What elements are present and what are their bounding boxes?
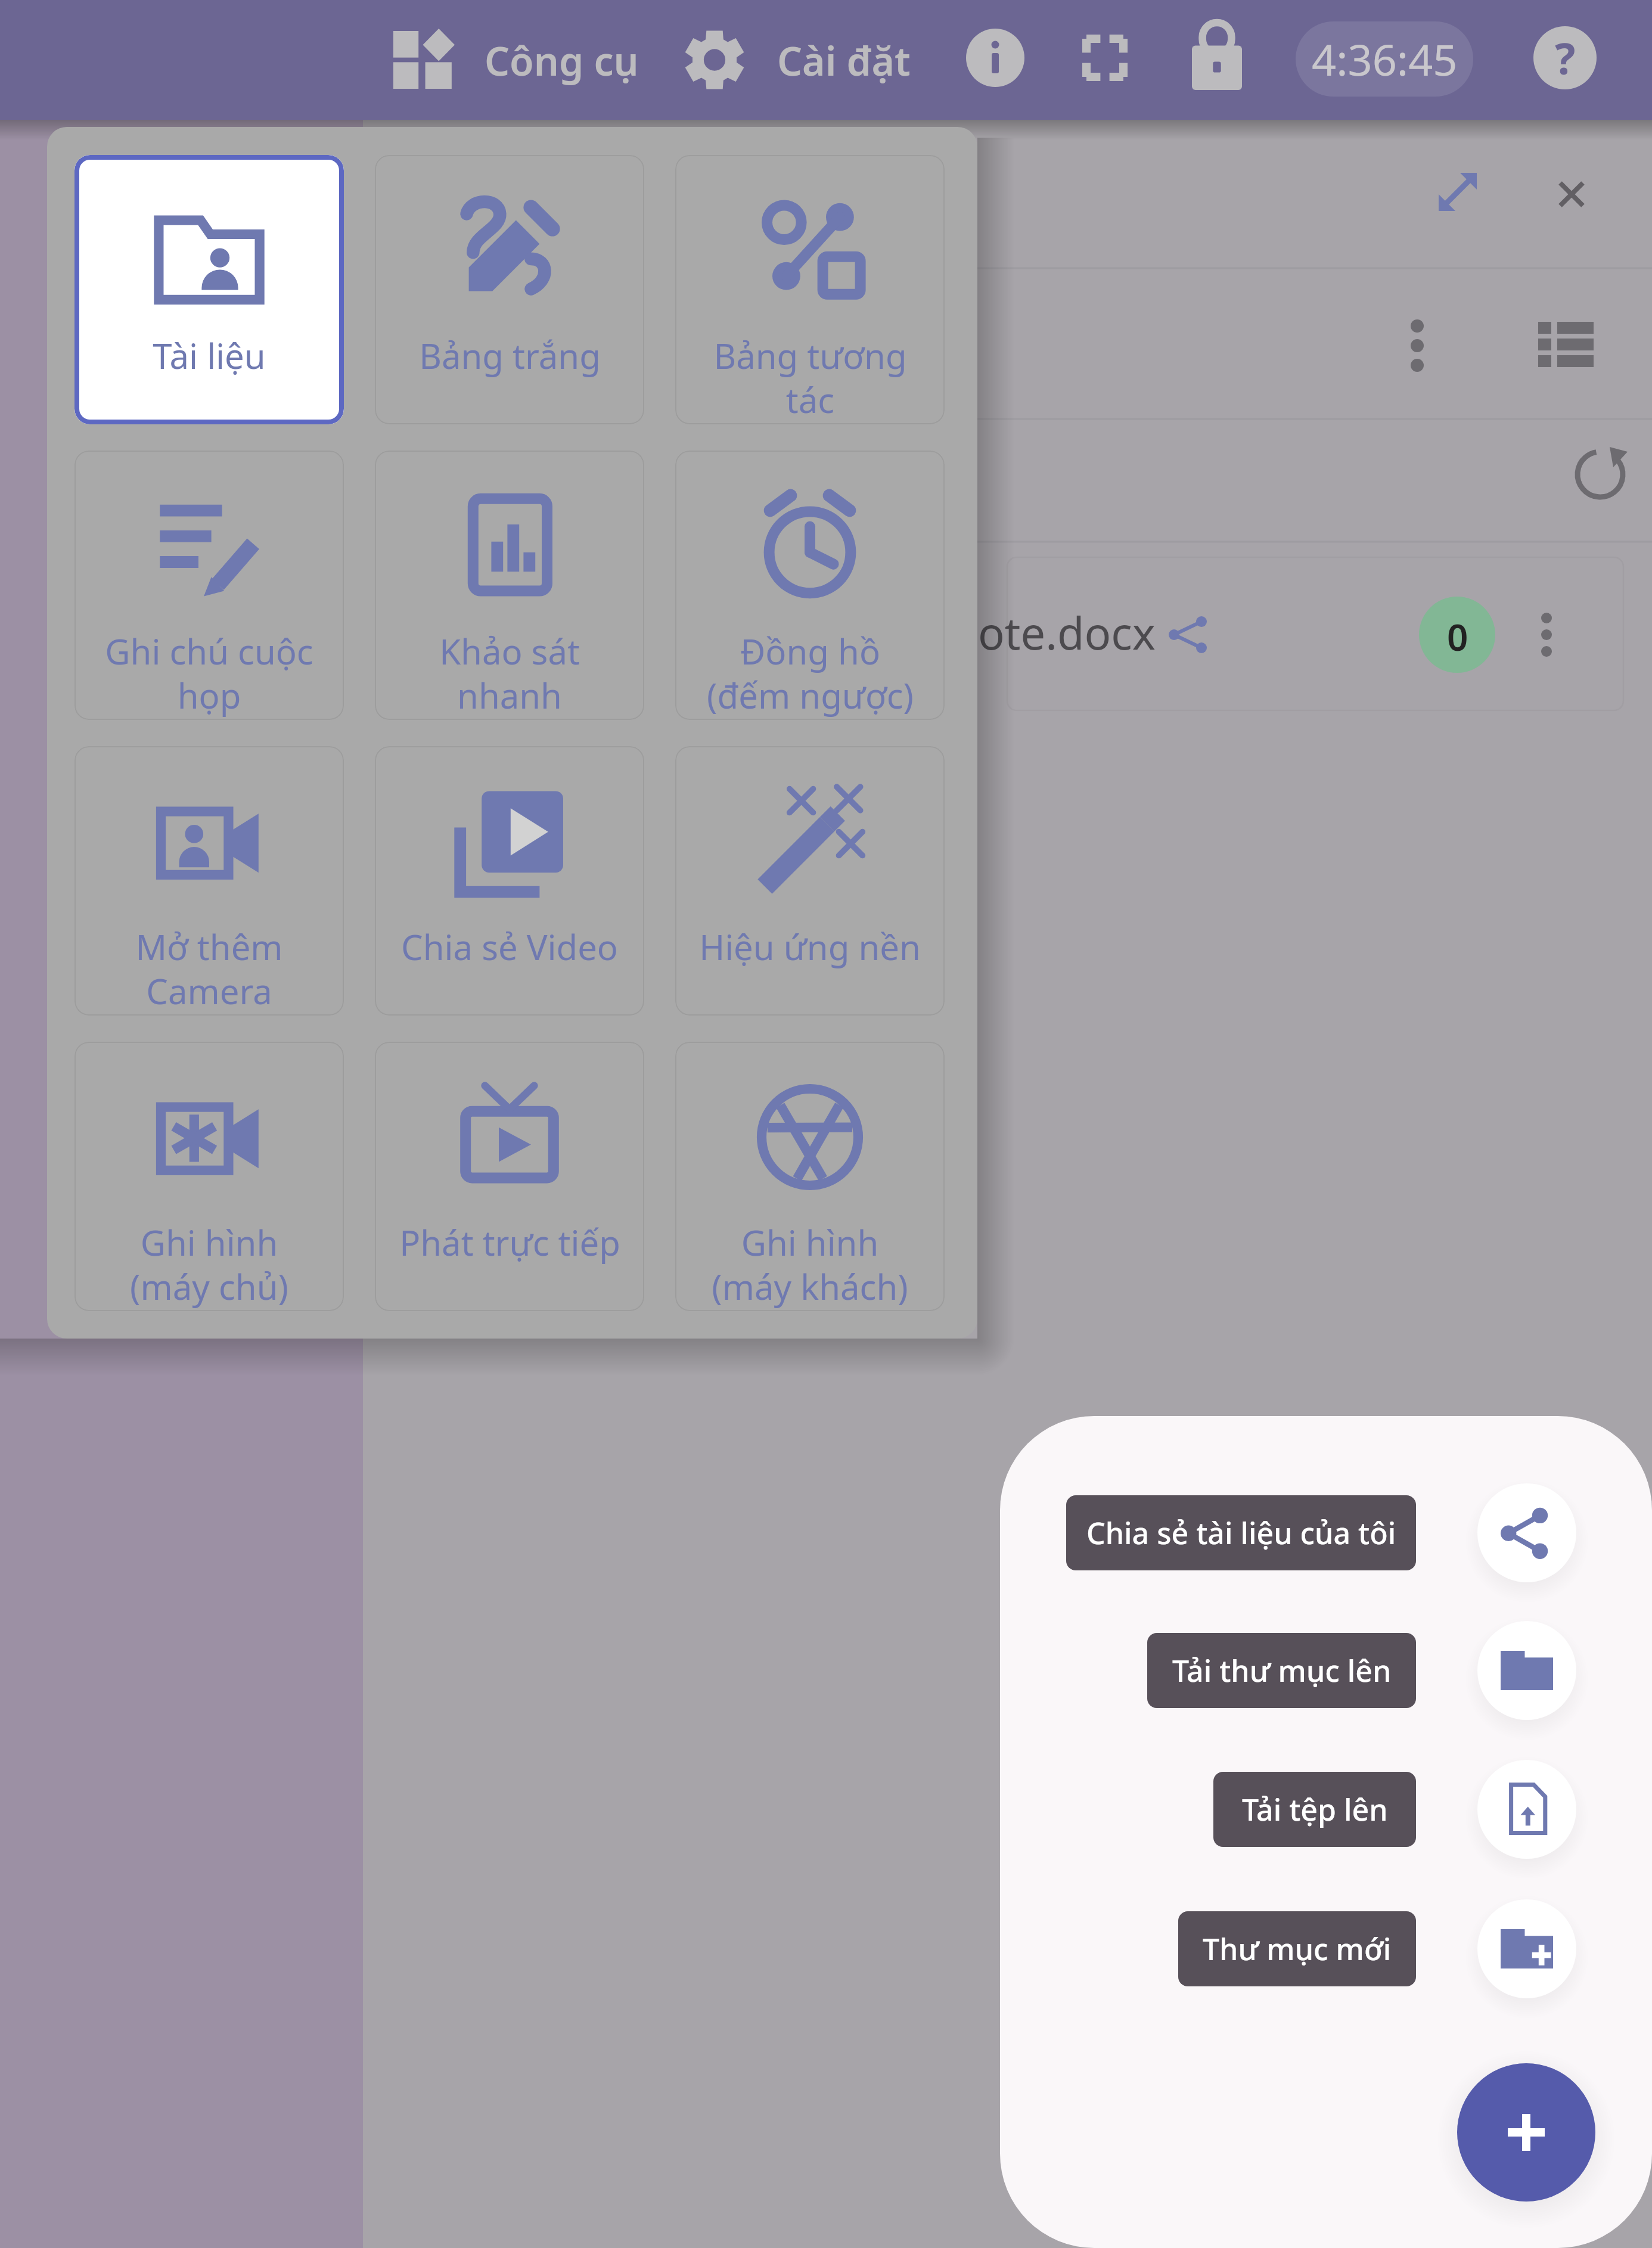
button[interactable]: Close (1532, 155, 1611, 234)
button[interactable]: Hiệu ứng nền (675, 746, 945, 1016)
button[interactable]: Ghi hình (máy chủ) (74, 1042, 344, 1311)
staticText: Cài đặt (777, 33, 911, 87)
staticText: Tải tệp lên (1242, 1789, 1388, 1830)
staticText: Thư mục mới (1203, 1929, 1392, 1969)
staticText: Ghi hình (máy chủ) (130, 1219, 288, 1310)
button[interactable]: Share file (1149, 595, 1228, 674)
button[interactable]: Tài liệu (74, 155, 344, 424)
staticText: Bảng trắng (419, 332, 601, 379)
button[interactable]: Tải tệp lên (1213, 1772, 1416, 1847)
button[interactable]: Phát trực tiếp (375, 1042, 644, 1311)
button[interactable]: File options (1507, 595, 1586, 674)
staticText: Hiệu ứng nền (699, 923, 921, 970)
button[interactable]: Help (1533, 26, 1597, 89)
button[interactable]: Fullscreen (1076, 29, 1134, 87)
button[interactable]: Bảng trắng (375, 155, 644, 424)
button[interactable]: Ghi hình (máy khách) (675, 1042, 945, 1311)
staticText: Mở thêm Camera (135, 923, 283, 1014)
button[interactable]: Cài đặt (685, 0, 911, 120)
staticText: Ghi chú cuộc họp (105, 628, 313, 719)
button[interactable]: Khảo sát nhanh (375, 451, 644, 720)
button[interactable]: 4:36:45 (1296, 21, 1473, 97)
staticText: Công cụ (485, 33, 639, 87)
button[interactable]: Add (1457, 2063, 1595, 2202)
button[interactable]: Refresh (1561, 435, 1639, 514)
button[interactable]: Ghi chú cuộc họp (74, 451, 344, 720)
button[interactable]: Mở thêm Camera (74, 746, 344, 1016)
staticText: Chia sẻ tài liệu của tôi (1086, 1513, 1396, 1553)
button[interactable]: Tải thư mục lên (1477, 1621, 1576, 1720)
button[interactable]: List view (1526, 306, 1605, 385)
button[interactable]: Tải tệp lên (1477, 1760, 1576, 1859)
staticText: ote.docx (978, 603, 1156, 663)
staticText: Ghi hình (máy khách) (712, 1219, 908, 1310)
button[interactable]: Expand (1418, 153, 1497, 231)
staticText: Khảo sát nhanh (439, 628, 580, 719)
staticText: Phát trực tiếp (399, 1219, 620, 1266)
button[interactable]: Information (966, 29, 1024, 87)
button[interactable]: Bảng tương tác (675, 155, 945, 424)
button[interactable]: More options (1378, 287, 1457, 365)
button[interactable]: Công cụ (393, 0, 639, 120)
button[interactable]: Thư mục mới (1477, 1899, 1576, 1998)
staticText: ? (1555, 29, 1576, 87)
button[interactable]: Chia sẻ tài liệu của tôi (1066, 1495, 1416, 1570)
staticText: Đồng hồ (đếm ngược) (707, 628, 914, 719)
button[interactable]: Chia sẻ tài liệu của tôi (1477, 1483, 1576, 1582)
staticText: 0 (1447, 611, 1468, 662)
staticText: Tài liệu (153, 332, 266, 379)
staticText: 4:36:45 (1312, 30, 1458, 88)
button[interactable]: Tải thư mục lên (1147, 1633, 1416, 1708)
staticText: Chia sẻ Video (401, 923, 618, 970)
button[interactable]: Lock (1179, 18, 1255, 94)
staticText: Tải thư mục lên (1172, 1650, 1392, 1691)
button[interactable]: Đồng hồ (đếm ngược) (675, 451, 945, 720)
button[interactable]: Chia sẻ Video (375, 746, 644, 1016)
staticText: Bảng tương tác (713, 332, 907, 423)
button[interactable]: Thư mục mới (1178, 1911, 1416, 1986)
